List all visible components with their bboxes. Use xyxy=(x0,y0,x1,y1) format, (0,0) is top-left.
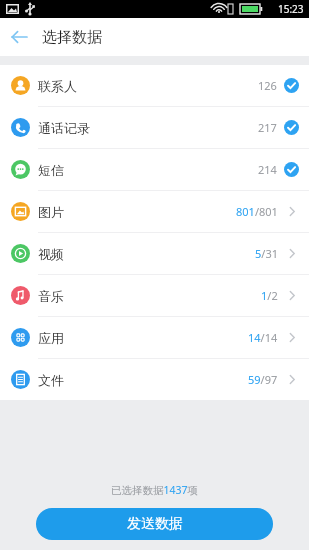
button[interactable]: Open 图片 xyxy=(284,204,299,219)
button[interactable]: 文件 xyxy=(0,359,309,400)
button[interactable]: 音乐 xyxy=(0,275,309,316)
staticText: 选择数据 xyxy=(42,28,102,47)
button[interactable]: 图片 xyxy=(0,191,309,232)
button[interactable]: 发送数据 xyxy=(36,508,273,540)
button[interactable]: 应用 xyxy=(0,317,309,358)
button[interactable]: Selected xyxy=(284,162,299,177)
button[interactable]: Selected xyxy=(284,78,299,93)
button[interactable]: Open 视频 xyxy=(284,246,299,261)
button[interactable]: Open 应用 xyxy=(284,330,299,345)
staticText: 59/97 xyxy=(248,372,278,387)
staticText: 文件 xyxy=(38,372,64,388)
staticText: 联系人 xyxy=(38,78,77,94)
staticText: 发送数据 xyxy=(127,515,183,533)
staticText: 图片 xyxy=(38,204,64,220)
button[interactable]: Open 音乐 xyxy=(284,288,299,303)
staticText: 1/2 xyxy=(261,288,278,303)
staticText: 通话记录 xyxy=(38,120,90,136)
staticText: 801/801 xyxy=(236,204,278,219)
staticText: 5/31 xyxy=(255,246,278,261)
button[interactable]: Open 文件 xyxy=(284,372,299,387)
staticText: 217 xyxy=(258,120,277,135)
staticText: 已选择数据1437项 xyxy=(111,483,199,497)
staticText: 视频 xyxy=(38,246,64,262)
staticText: 15:23 xyxy=(278,2,304,16)
staticText: 应用 xyxy=(38,330,64,346)
staticText: 14/14 xyxy=(248,330,278,345)
button[interactable]: 通话记录 xyxy=(0,107,309,148)
button[interactable]: 视频 xyxy=(0,233,309,274)
button[interactable]: Selected xyxy=(284,120,299,135)
button[interactable]: 短信 xyxy=(0,149,309,190)
staticText: 短信 xyxy=(38,162,64,178)
staticText: 126 xyxy=(258,78,277,93)
button[interactable]: Back xyxy=(0,18,38,56)
staticText: 214 xyxy=(258,162,277,177)
staticText: 音乐 xyxy=(38,288,64,304)
button[interactable]: 联系人 xyxy=(0,65,309,106)
